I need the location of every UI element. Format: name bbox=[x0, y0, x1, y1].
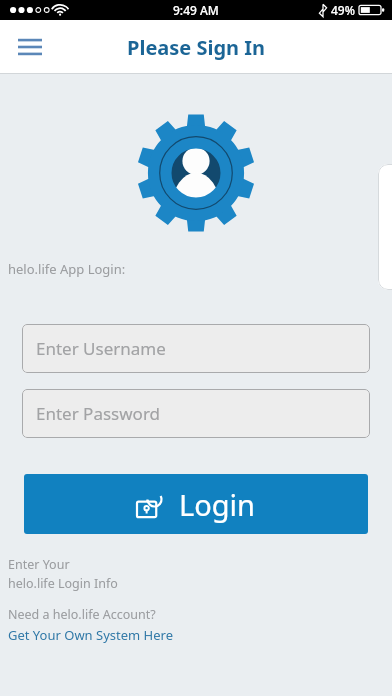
staticText: Enter Your bbox=[8, 556, 70, 573]
staticText: Login bbox=[179, 485, 255, 524]
staticText: Please Sign In bbox=[127, 34, 266, 61]
staticText: Need a helo.life Account? bbox=[8, 606, 156, 623]
button[interactable]: Enter Username bbox=[22, 324, 370, 373]
staticText: Enter Username bbox=[36, 337, 166, 360]
button[interactable]: Get Your Own System Here bbox=[8, 626, 173, 644]
staticText: Enter Password bbox=[36, 402, 161, 425]
staticText: helo.life Login Info bbox=[8, 575, 118, 592]
staticText: 9:49 AM bbox=[173, 2, 219, 18]
button[interactable]: Enter Password bbox=[22, 389, 370, 438]
button[interactable]: Open navigation menu bbox=[8, 25, 52, 69]
staticText: helo.life App Login: bbox=[8, 260, 126, 278]
staticText: Get Your Own System Here bbox=[8, 626, 173, 644]
button[interactable]: Login bbox=[24, 474, 368, 534]
staticText: 49% bbox=[331, 2, 355, 18]
